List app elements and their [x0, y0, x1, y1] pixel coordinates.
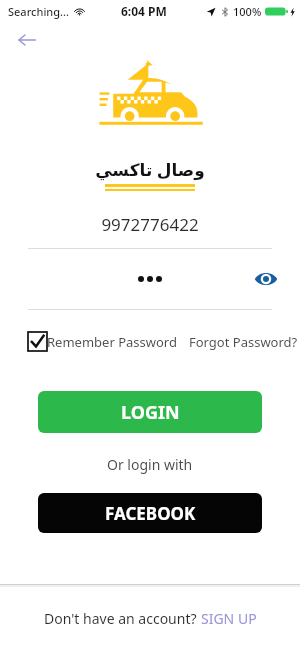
button[interactable]: Show password: [250, 263, 282, 295]
staticText: Remember Password: [47, 333, 177, 351]
staticText: 6:04 PM: [121, 3, 167, 19]
staticText: Or login with: [107, 455, 193, 474]
staticText: 9972776422: [101, 213, 199, 236]
button[interactable]: FACEBOOK: [38, 493, 262, 533]
staticText: SIGN UP: [201, 609, 257, 628]
button[interactable]: 9972776422: [0, 200, 300, 248]
staticText: Don't have an account?: [44, 609, 201, 628]
staticText: LOGIN: [121, 400, 180, 425]
button[interactable]: Remember Password: [28, 332, 177, 351]
button[interactable]: Don't have an account?: [44, 609, 257, 628]
button[interactable]: Show password: [0, 249, 300, 309]
staticText: Forgot Password?: [189, 333, 298, 351]
staticText: Searching...: [8, 4, 70, 19]
button[interactable]: Forgot Password?: [189, 333, 298, 351]
button[interactable]: LOGIN: [38, 391, 262, 433]
staticText: وصال تاكسي: [95, 158, 205, 181]
button[interactable]: Back: [10, 26, 44, 54]
staticText: 100%: [233, 4, 262, 19]
staticText: FACEBOOK: [105, 502, 196, 525]
